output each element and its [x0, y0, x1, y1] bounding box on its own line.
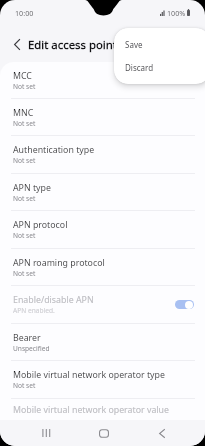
button[interactable]: Navigate up	[4, 31, 30, 57]
button[interactable]: APN protocol	[0, 211, 205, 248]
staticText: Enable/disable APN	[13, 294, 94, 306]
staticText: APN protocol	[13, 219, 68, 231]
staticText: Not set	[13, 82, 36, 91]
button[interactable]: Enable/disable APN	[175, 300, 194, 309]
button[interactable]: Enable/disable APN	[0, 286, 205, 323]
button[interactable]: Save	[114, 33, 205, 56]
staticText: Not set	[13, 156, 36, 165]
button[interactable]: MCC	[0, 62, 205, 98]
staticText: Save	[125, 39, 143, 50]
staticText: Not set	[13, 269, 36, 278]
staticText: Mobile virtual network operator type	[13, 369, 165, 381]
staticText: APN enabled.	[13, 306, 55, 315]
button[interactable]: Mobile virtual network operator type	[0, 361, 205, 398]
staticText: APN roaming protocol	[13, 257, 105, 269]
button[interactable]: Bearer	[0, 324, 205, 360]
button[interactable]: Mobile virtual network operator value	[0, 399, 205, 420]
staticText: Unspecified	[13, 344, 50, 353]
staticText: Authentication type	[13, 144, 95, 156]
staticText: 100%	[167, 8, 186, 18]
button[interactable]: Authentication type	[0, 136, 205, 173]
button[interactable]: APN roaming protocol	[0, 249, 205, 285]
staticText: Not set	[13, 119, 36, 128]
staticText: Edit access point	[28, 37, 117, 53]
button[interactable]: Recent apps	[31, 420, 60, 446]
staticText: Mobile virtual network operator value	[13, 404, 169, 416]
staticText: APN type	[13, 182, 51, 194]
button[interactable]: Discard	[114, 56, 205, 79]
staticText: Not set	[13, 231, 36, 240]
staticText: MCC	[13, 70, 32, 82]
staticText: Bearer	[13, 332, 41, 344]
staticText: Not set	[13, 194, 36, 203]
staticText: 10:00	[15, 8, 34, 18]
staticText: MNC	[13, 107, 34, 119]
button[interactable]: APN type	[0, 174, 205, 210]
staticText: Discard	[125, 62, 154, 73]
button[interactable]: Home	[89, 420, 118, 446]
button[interactable]: MNC	[0, 99, 205, 135]
button[interactable]: Back	[147, 420, 176, 446]
staticText: Not set	[13, 381, 36, 390]
